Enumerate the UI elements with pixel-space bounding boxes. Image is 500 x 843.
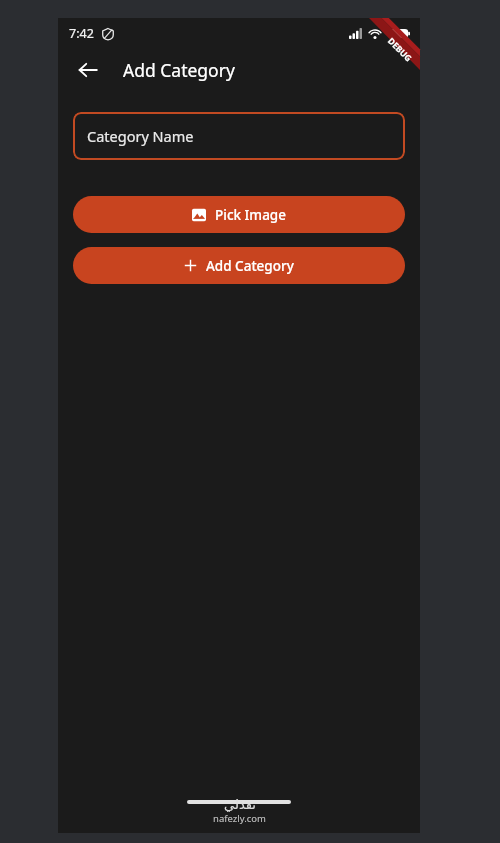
staticText: nafezly.com	[213, 812, 266, 825]
staticText: Pick Image	[215, 206, 286, 224]
button[interactable]: Category Name	[73, 112, 405, 160]
staticText: DEBUG	[385, 35, 415, 65]
staticText: Add Category	[123, 58, 235, 82]
staticText: نفذلي	[224, 797, 256, 812]
staticText: Add Category	[206, 257, 294, 275]
staticText: Category Name	[87, 126, 194, 146]
button[interactable]: Back	[70, 52, 106, 88]
staticText: 7:42	[69, 25, 94, 42]
button[interactable]: Add Category	[73, 247, 405, 284]
button[interactable]: Pick Image	[73, 196, 405, 233]
